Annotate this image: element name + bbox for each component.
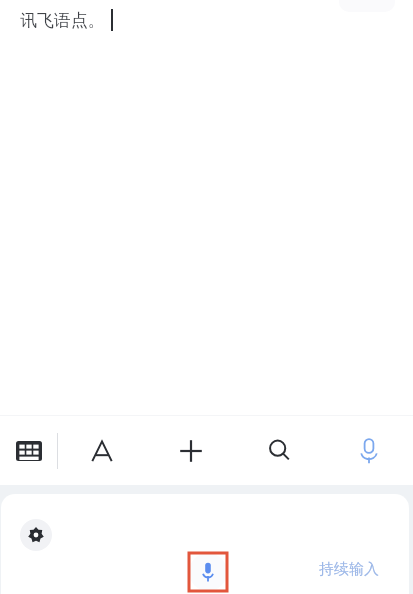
button[interactable]: Font xyxy=(58,416,146,485)
staticText: 讯飞语点。 xyxy=(20,10,105,31)
button[interactable]: 持续输入 xyxy=(319,552,379,586)
staticText: 持续输入 xyxy=(319,560,379,579)
button[interactable]: Add xyxy=(146,416,235,485)
button[interactable]: Settings xyxy=(20,519,52,551)
button[interactable]: Keyboard xyxy=(0,416,57,485)
button[interactable]: Microphone xyxy=(189,553,227,591)
button[interactable]: Search xyxy=(235,416,324,485)
button[interactable]: Voice input xyxy=(324,416,413,485)
